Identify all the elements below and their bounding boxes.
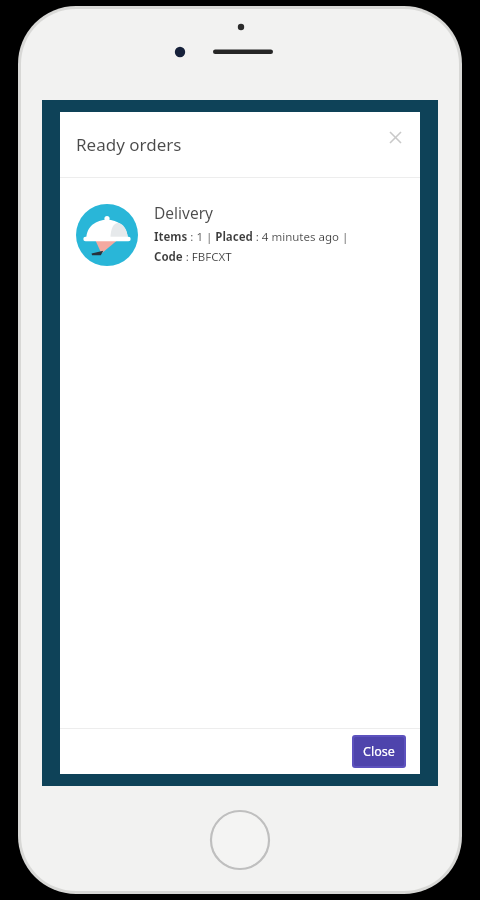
button[interactable]: Delivery xyxy=(76,200,406,266)
button[interactable]: Close xyxy=(354,737,404,766)
staticText: Close xyxy=(363,743,395,760)
staticText: Ready orders xyxy=(76,133,182,156)
button[interactable]: Close dialog xyxy=(380,122,410,152)
staticText: Delivery xyxy=(154,202,213,223)
staticText: Items : 1 | Placed : 4 minutes ago | xyxy=(154,229,349,245)
staticText: Code : FBFCXT xyxy=(154,249,232,265)
